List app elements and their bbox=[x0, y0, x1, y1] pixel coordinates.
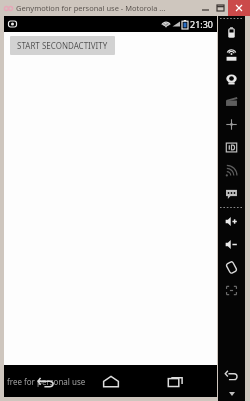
staticText: free for personal use bbox=[7, 376, 86, 387]
button[interactable]: Home bbox=[89, 365, 133, 397]
button[interactable]: Recents bbox=[153, 365, 197, 397]
staticText: Genymotion for personal use - Motorola .… bbox=[16, 3, 166, 13]
button[interactable]: Camera bbox=[218, 67, 245, 90]
button[interactable]: Close bbox=[228, 0, 250, 16]
button[interactable]: Maximize bbox=[213, 0, 228, 16]
button[interactable]: Minimize bbox=[198, 0, 213, 16]
button[interactable]: Accelerometer bbox=[218, 113, 245, 136]
button[interactable]: Screen record bbox=[218, 90, 245, 113]
button[interactable]: Battery bbox=[218, 21, 245, 44]
button[interactable]: Volume down bbox=[218, 233, 245, 256]
button[interactable]: Back bbox=[218, 364, 245, 387]
staticText: 21:30 bbox=[190, 18, 214, 30]
button[interactable]: Network bbox=[218, 159, 245, 182]
button[interactable]: START SECONDACTIVITY bbox=[10, 36, 115, 55]
button[interactable]: Back bbox=[24, 365, 68, 397]
button[interactable]: GPS bbox=[218, 44, 245, 67]
button[interactable]: More bbox=[218, 387, 245, 401]
button[interactable]: Volume up bbox=[218, 210, 245, 233]
button[interactable]: Screenshot bbox=[218, 279, 245, 302]
button[interactable]: Identifiers bbox=[218, 136, 245, 159]
button[interactable]: SMS bbox=[218, 182, 245, 205]
button[interactable]: Rotate bbox=[218, 256, 245, 279]
staticText: START SECONDACTIVITY bbox=[17, 40, 108, 51]
